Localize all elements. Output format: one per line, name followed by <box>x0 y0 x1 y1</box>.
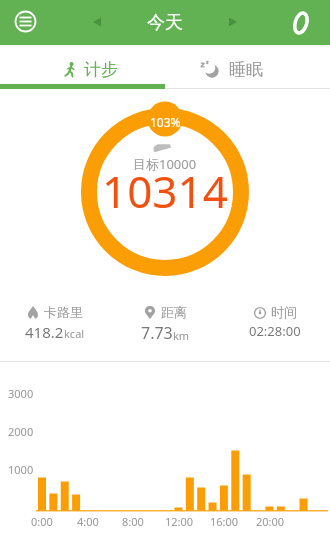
staticText: 今天 <box>147 11 183 34</box>
button[interactable] <box>286 6 316 39</box>
staticText: 20:00 <box>256 514 285 529</box>
staticText: 时间 <box>271 304 297 320</box>
button[interactable]: 时间 <box>220 304 330 340</box>
button[interactable]: 距离 <box>110 304 220 344</box>
staticText: 418.2 <box>25 322 64 342</box>
staticText: 16:00 <box>210 514 239 529</box>
staticText: 02:28:00 <box>249 322 301 340</box>
button[interactable] <box>85 10 109 34</box>
staticText: 10314 <box>102 161 228 221</box>
button[interactable] <box>221 10 245 34</box>
staticText: 4:00 <box>77 514 99 529</box>
button[interactable]: 计步 <box>0 45 165 89</box>
staticText: km <box>173 328 190 343</box>
staticText: 睡眠 <box>229 59 263 80</box>
staticText: 7.73 <box>141 322 173 344</box>
staticText: 0:00 <box>31 514 53 529</box>
staticText: 8:00 <box>122 514 144 529</box>
staticText: 计步 <box>84 59 118 80</box>
staticText: kcal <box>64 326 85 341</box>
staticText: 2000 <box>8 424 34 439</box>
staticText: 卡路里 <box>44 304 83 320</box>
button[interactable]: 卡路里 <box>0 304 110 342</box>
button[interactable]: 睡眠 <box>165 45 330 89</box>
staticText: 12:00 <box>165 514 194 529</box>
staticText: 3000 <box>8 386 34 401</box>
staticText: 距离 <box>161 304 187 320</box>
button[interactable] <box>11 7 40 36</box>
staticText: 目标10000 <box>133 155 197 173</box>
staticText: 103% <box>150 114 181 130</box>
staticText: 1000 <box>8 462 34 477</box>
